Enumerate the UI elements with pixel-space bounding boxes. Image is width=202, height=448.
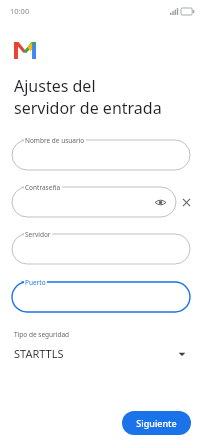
staticText: STARTTLS <box>14 346 178 361</box>
staticText: Siguiente <box>136 417 177 429</box>
button[interactable]: Tipo de seguridad <box>14 330 190 361</box>
staticText: Tipo de seguridad <box>14 330 70 339</box>
staticText: Ajustes del servidor de entrada <box>14 75 162 119</box>
staticText: Nombre de usuario <box>25 136 85 145</box>
button[interactable]: Servidor <box>12 234 190 264</box>
button[interactable]: Puerto <box>12 282 190 312</box>
button[interactable]: Contraseña <box>12 187 176 217</box>
button[interactable]: Borrar <box>176 192 196 212</box>
staticText: 10:00 <box>10 6 30 16</box>
staticText: Contraseña <box>25 183 61 192</box>
button[interactable]: Mostrar contraseña <box>152 194 168 210</box>
staticText: Puerto <box>25 278 46 287</box>
staticText: Servidor <box>25 230 51 239</box>
button[interactable]: Siguiente <box>122 411 191 435</box>
button[interactable]: Nombre de usuario <box>12 140 190 170</box>
